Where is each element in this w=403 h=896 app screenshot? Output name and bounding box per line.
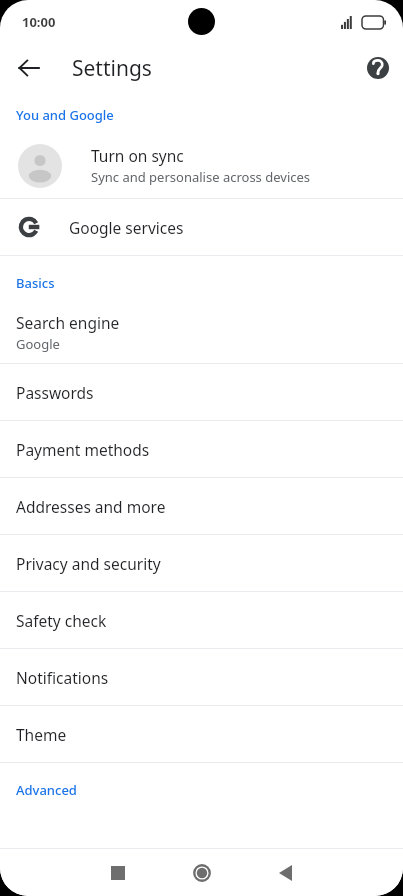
staticText: You and Google <box>16 106 114 124</box>
staticText: Turn on sync <box>91 145 184 166</box>
button[interactable]: Addresses and more <box>0 478 403 534</box>
staticText: Passwords <box>16 382 94 403</box>
button[interactable]: Recent apps <box>96 851 140 895</box>
staticText: Google <box>16 335 60 353</box>
staticText: Notifications <box>16 667 109 688</box>
staticText: Addresses and more <box>16 496 166 517</box>
staticText: Theme <box>16 724 67 745</box>
button[interactable]: Google services <box>0 199 403 255</box>
button[interactable]: Back <box>263 851 307 895</box>
button[interactable]: Help and feedback <box>356 46 400 90</box>
staticText: Privacy and security <box>16 553 161 574</box>
button[interactable]: Search engine <box>0 302 403 363</box>
staticText: Advanced <box>16 781 77 799</box>
button[interactable]: Theme <box>0 706 403 762</box>
staticText: Settings <box>72 54 152 83</box>
staticText: Payment methods <box>16 439 150 460</box>
staticText: 10:00 <box>22 13 56 31</box>
staticText: Safety check <box>16 610 107 631</box>
button[interactable]: Safety check <box>0 592 403 648</box>
button[interactable]: Turn on sync <box>0 133 403 198</box>
staticText: Basics <box>16 274 55 292</box>
staticText: Google services <box>69 217 184 238</box>
button[interactable]: Privacy and security <box>0 535 403 591</box>
button[interactable]: Home <box>180 851 224 895</box>
button[interactable]: Back <box>7 46 51 90</box>
button[interactable]: Payment methods <box>0 421 403 477</box>
button[interactable]: Passwords <box>0 364 403 420</box>
staticText: Sync and personalise across devices <box>91 168 311 186</box>
staticText: Search engine <box>16 312 120 333</box>
button[interactable]: Notifications <box>0 649 403 705</box>
